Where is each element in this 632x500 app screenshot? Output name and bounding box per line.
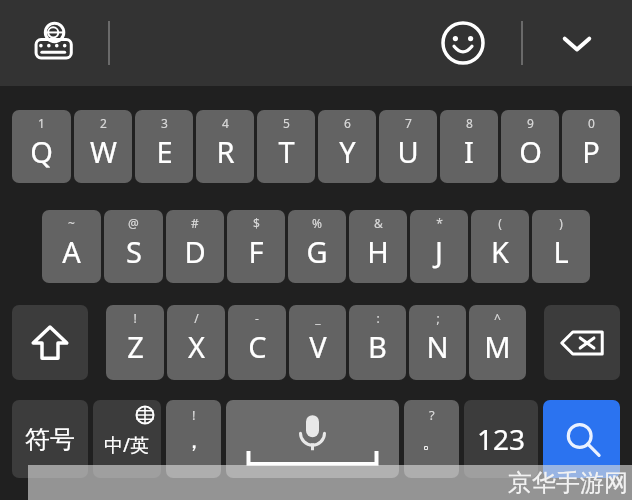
button[interactable]: ! xyxy=(166,400,221,478)
staticText: L xyxy=(553,232,569,271)
button[interactable]: @ xyxy=(104,210,163,283)
staticText: 3 xyxy=(161,115,168,131)
staticText: R xyxy=(216,132,235,171)
button[interactable]: 8 xyxy=(440,110,498,183)
staticText: / xyxy=(194,310,199,326)
button[interactable]: ? xyxy=(404,400,459,478)
button[interactable]: Emoji xyxy=(428,8,498,78)
staticText: G xyxy=(306,232,328,271)
staticText: I xyxy=(464,132,474,171)
button[interactable]: - xyxy=(228,305,286,380)
button[interactable]: # xyxy=(166,210,224,283)
staticText: 8 xyxy=(466,115,473,131)
button[interactable]: ( xyxy=(471,210,529,283)
staticText: 1 xyxy=(38,115,45,131)
staticText: S xyxy=(126,232,142,271)
staticText: N xyxy=(426,327,449,366)
button[interactable]: / xyxy=(167,305,225,380)
staticText: U xyxy=(397,132,419,171)
staticText: Z xyxy=(127,327,144,366)
staticText: ? xyxy=(429,406,435,424)
staticText: A xyxy=(62,232,81,271)
staticText: 京华手游网 xyxy=(508,468,628,498)
staticText: - xyxy=(255,310,259,326)
staticText: 。 xyxy=(422,430,441,454)
button[interactable]: Backspace xyxy=(544,305,620,380)
staticText: 中/英 xyxy=(104,432,150,458)
staticText: 符号 xyxy=(25,424,75,455)
button[interactable]: ! xyxy=(106,305,164,380)
button[interactable]: 中/英 xyxy=(93,400,161,478)
staticText: 7 xyxy=(405,115,412,131)
staticText: J xyxy=(435,232,443,271)
button[interactable]: : xyxy=(349,305,406,380)
staticText: * xyxy=(436,215,443,231)
button[interactable]: ~ xyxy=(42,210,101,283)
button[interactable]: % xyxy=(288,210,346,283)
button[interactable]: & xyxy=(349,210,407,283)
staticText: Q xyxy=(30,132,53,171)
staticText: ! xyxy=(192,406,196,424)
button[interactable]: Switch input language xyxy=(20,8,90,78)
button[interactable]: 4 xyxy=(196,110,254,183)
staticText: 4 xyxy=(222,115,229,131)
button[interactable]: * xyxy=(410,210,468,283)
button[interactable]: 9 xyxy=(501,110,559,183)
staticText: Y xyxy=(339,132,356,171)
staticText: @ xyxy=(128,215,139,231)
staticText: 2 xyxy=(100,115,107,131)
staticText: ， xyxy=(183,427,205,455)
staticText: X xyxy=(188,327,205,366)
button[interactable]: 符号 xyxy=(12,400,88,478)
staticText: E xyxy=(156,132,173,171)
staticText: 123 xyxy=(477,420,526,458)
staticText: $ xyxy=(253,215,260,231)
button[interactable]: ) xyxy=(532,210,590,283)
staticText: ) xyxy=(559,215,563,231)
staticText: C xyxy=(248,327,267,366)
staticText: K xyxy=(491,232,509,271)
button[interactable]: 123 xyxy=(464,400,538,478)
staticText: : xyxy=(376,310,380,326)
button[interactable]: 0 xyxy=(562,110,620,183)
button[interactable]: Search xyxy=(543,400,620,478)
button[interactable]: 7 xyxy=(379,110,437,183)
button[interactable]: 6 xyxy=(318,110,376,183)
button[interactable]: _ xyxy=(289,305,346,380)
button[interactable]: $ xyxy=(227,210,285,283)
staticText: 9 xyxy=(527,115,534,131)
staticText: H xyxy=(367,232,389,271)
staticText: & xyxy=(374,215,383,231)
staticText: B xyxy=(368,327,387,366)
button[interactable]: 3 xyxy=(135,110,193,183)
staticText: V xyxy=(309,327,327,366)
staticText: W xyxy=(90,132,117,171)
staticText: ; xyxy=(436,310,440,326)
button[interactable]: ; xyxy=(409,305,466,380)
staticText: T xyxy=(278,132,295,171)
staticText: ! xyxy=(133,310,137,326)
button[interactable]: ^ xyxy=(469,305,526,380)
staticText: D xyxy=(184,232,206,271)
staticText: ( xyxy=(498,215,502,231)
staticText: ^ xyxy=(494,310,501,326)
staticText: F xyxy=(248,232,264,271)
button[interactable]: 5 xyxy=(257,110,315,183)
staticText: 0 xyxy=(588,115,595,131)
button[interactable]: 2 xyxy=(74,110,132,183)
staticText: 6 xyxy=(344,115,351,131)
staticText: % xyxy=(312,215,322,231)
staticText: _ xyxy=(315,310,321,326)
button[interactable]: Hide keyboard xyxy=(542,8,612,78)
staticText: # xyxy=(191,215,199,231)
button[interactable]: Space xyxy=(226,400,399,478)
staticText: ~ xyxy=(68,215,75,231)
staticText: P xyxy=(582,132,600,171)
staticText: O xyxy=(519,132,542,171)
staticText: 5 xyxy=(283,115,290,131)
button[interactable]: Shift xyxy=(12,305,88,380)
button[interactable]: 1 xyxy=(12,110,71,183)
staticText: M xyxy=(484,327,511,366)
